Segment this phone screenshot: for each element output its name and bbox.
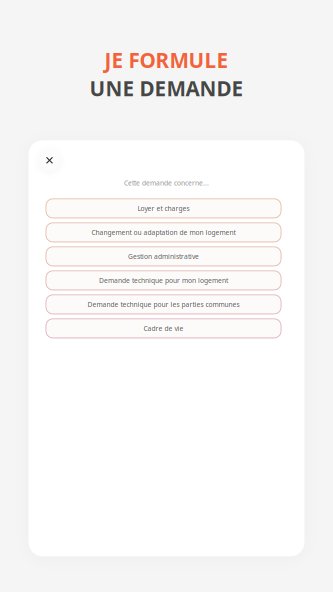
button[interactable]: Loyer et charges [45,198,281,218]
staticText: Loyer et charges [137,204,189,213]
button[interactable]: Changement ou adaptation de mon logement [45,222,281,242]
button[interactable]: Close [38,149,60,171]
button[interactable]: Cadre de vie [45,318,281,338]
staticText: Cadre de vie [143,324,183,333]
staticText: Cette demande concerne... [124,178,209,187]
button[interactable]: Demande technique pour les parties commu… [45,294,281,314]
staticText: Changement ou adaptation de mon logement [91,228,235,237]
staticText: Gestion administrative [128,252,199,261]
button[interactable]: Demande technique pour mon logement [45,270,281,290]
button[interactable]: Gestion administrative [45,246,281,266]
staticText: JE FORMULE [104,46,228,74]
staticText: UNE DEMANDE [89,74,243,102]
staticText: Demande technique pour les parties commu… [87,300,239,309]
staticText: Demande technique pour mon logement [99,276,228,285]
